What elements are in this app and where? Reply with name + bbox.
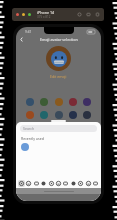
- button[interactable]: Colour: [26, 98, 34, 106]
- staticText: iPhone 14: [37, 10, 55, 15]
- button[interactable]: Rotate: [77, 12, 82, 17]
- staticText: 375 x 812: [37, 15, 51, 19]
- button[interactable]: Recent emoji: [21, 143, 29, 151]
- button[interactable]: Colour: [40, 111, 48, 119]
- button[interactable]: Colour: [26, 111, 34, 119]
- staticText: Recently used: [21, 136, 44, 141]
- staticText: Emoji avatar selection: [40, 37, 78, 42]
- button[interactable]: Colour: [55, 98, 63, 106]
- button[interactable]: Minimise: [22, 13, 25, 16]
- button[interactable]: Emoji category: [18, 180, 25, 187]
- button[interactable]: Colour: [40, 98, 48, 106]
- button[interactable]: Avatar: [46, 46, 71, 71]
- button[interactable]: Colour: [69, 111, 77, 119]
- button[interactable]: Emoji category: [25, 180, 32, 187]
- button[interactable]: Back: [18, 36, 25, 43]
- button[interactable]: Emoji category: [33, 180, 40, 187]
- button[interactable]: Colour: [55, 111, 63, 119]
- button[interactable]: Emoji category: [40, 180, 47, 187]
- button[interactable]: Record: [95, 12, 100, 17]
- button[interactable]: Emoji category: [70, 180, 77, 187]
- button[interactable]: Maximise: [28, 13, 31, 16]
- button[interactable]: Colour: [83, 111, 91, 119]
- button[interactable]: Emoji category: [55, 180, 62, 187]
- button[interactable]: Colour: [83, 98, 91, 106]
- button[interactable]: Screenshot: [86, 12, 91, 17]
- button[interactable]: Emoji category: [77, 180, 84, 187]
- button[interactable]: Close: [16, 13, 19, 16]
- staticText: 9:41: [25, 30, 32, 34]
- button[interactable]: Emoji category: [62, 180, 69, 187]
- staticText: Search: [23, 126, 35, 131]
- button[interactable]: Colour: [69, 98, 77, 106]
- button[interactable]: Emoji category: [92, 180, 99, 187]
- button[interactable]: Search: [20, 125, 97, 132]
- button[interactable]: Emoji category: [85, 180, 92, 187]
- button[interactable]: Emoji category: [48, 180, 55, 187]
- button[interactable]: Edit emoji: [50, 74, 67, 79]
